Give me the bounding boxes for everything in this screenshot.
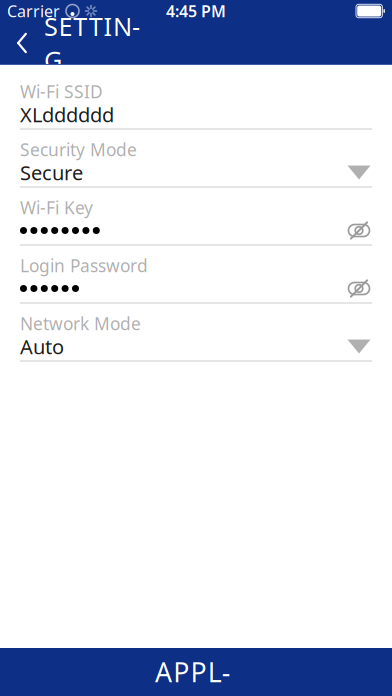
staticText: Login Password <box>20 254 148 277</box>
button[interactable]: APPLY <box>0 648 392 696</box>
staticText: Wi-Fi Key <box>20 196 93 219</box>
staticText: APPLY <box>155 654 237 690</box>
staticText: Auto <box>20 333 64 360</box>
button[interactable]: Network Mode <box>20 309 372 367</box>
staticText: Network Mode <box>20 312 141 335</box>
staticText: 4:45 PM <box>166 0 226 22</box>
staticText: SETTING <box>44 9 140 77</box>
staticText: Security Mode <box>20 138 137 161</box>
staticText: Secure <box>20 159 83 186</box>
button[interactable]: Security Mode <box>20 135 372 193</box>
staticText: Carrier <box>7 0 60 22</box>
staticText: XLdddddd <box>20 101 114 128</box>
button[interactable]: Back <box>0 22 44 64</box>
staticText: Wi-Fi SSID <box>20 80 103 103</box>
